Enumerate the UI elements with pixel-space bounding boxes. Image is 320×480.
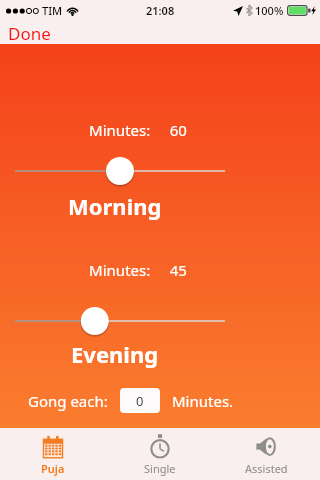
staticText: 21:08 xyxy=(146,3,175,18)
staticText: Assisted xyxy=(245,461,288,476)
staticText: Single xyxy=(144,461,176,476)
staticText: Minutes: 45 xyxy=(89,260,187,280)
button[interactable]: 0 xyxy=(120,388,160,413)
button[interactable]: Single xyxy=(106,428,213,480)
button[interactable]: Done xyxy=(0,20,61,44)
staticText: 100% xyxy=(255,3,284,18)
staticText: Morning xyxy=(68,191,162,221)
button[interactable]: Puja xyxy=(0,428,106,480)
staticText: Gong each: xyxy=(28,391,108,411)
staticText: Done xyxy=(8,22,51,42)
staticText: TIM xyxy=(42,3,63,18)
button[interactable]: Duration slider xyxy=(0,153,320,189)
staticText: Puja xyxy=(41,461,65,476)
staticText: Minutes: 60 xyxy=(89,120,187,140)
button[interactable]: Assisted xyxy=(213,428,320,480)
staticText: Minutes. xyxy=(172,391,234,411)
staticText: 0 xyxy=(136,392,144,410)
button[interactable]: Duration slider xyxy=(0,303,320,339)
staticText: Evening xyxy=(71,339,159,369)
